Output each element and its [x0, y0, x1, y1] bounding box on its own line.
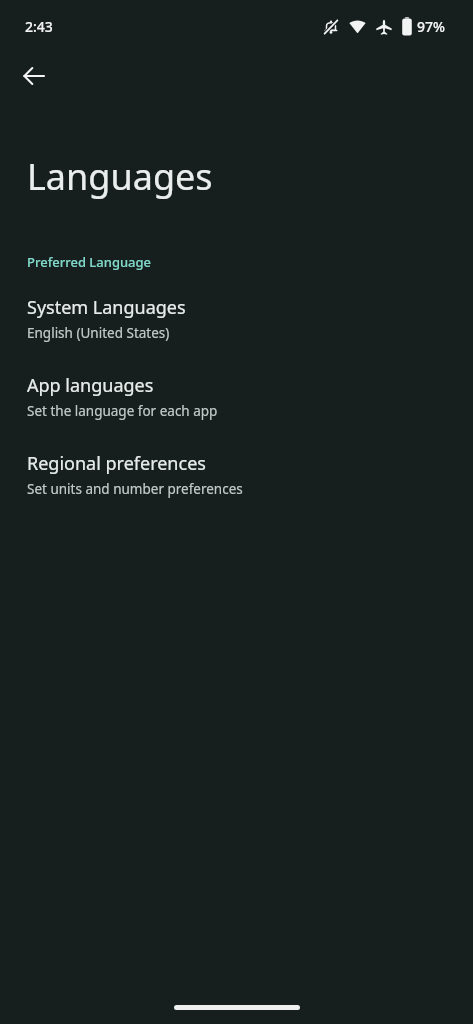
staticText: System Languages	[27, 295, 186, 320]
staticText: 2:43	[25, 17, 53, 36]
button[interactable]: Back	[10, 52, 58, 100]
button[interactable]: Regional preferences	[0, 449, 473, 502]
staticText: 97%	[417, 17, 445, 36]
staticText: Set units and number preferences	[27, 480, 243, 498]
staticText: App languages	[27, 373, 154, 398]
staticText: Set the language for each app	[27, 402, 218, 420]
staticText: English (United States)	[27, 324, 170, 342]
staticText: Preferred Language	[27, 253, 152, 271]
staticText: Languages	[27, 152, 213, 201]
button[interactable]: App languages	[0, 371, 473, 424]
staticText: Regional preferences	[27, 451, 206, 476]
button[interactable]: System Languages	[0, 293, 473, 346]
